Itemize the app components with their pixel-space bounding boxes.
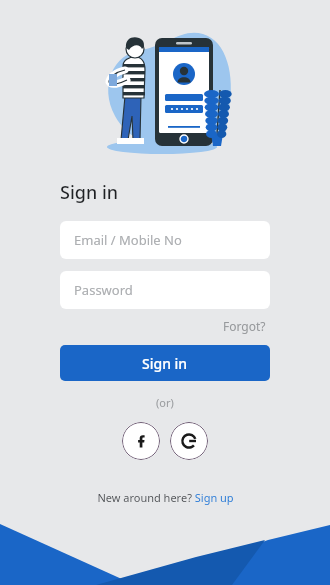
button[interactable]: New around here? Sign up bbox=[93, 488, 238, 507]
staticText: Forgot? bbox=[223, 318, 266, 334]
button[interactable]: Sign in bbox=[60, 345, 270, 381]
staticText: Password bbox=[74, 281, 133, 299]
staticText: Sign in bbox=[142, 354, 188, 373]
button[interactable]: Email / Mobile No bbox=[60, 221, 270, 259]
button[interactable]: Password bbox=[60, 271, 270, 309]
staticText: New around here? Sign up bbox=[97, 490, 234, 505]
staticText: Sign in bbox=[60, 180, 119, 205]
button[interactable]: Forgot? bbox=[219, 315, 270, 337]
staticText: Email / Mobile No bbox=[74, 231, 182, 249]
button[interactable]: Sign in with Facebook bbox=[122, 422, 160, 460]
staticText: (or) bbox=[156, 395, 174, 410]
button[interactable]: Sign in with Google bbox=[170, 422, 208, 460]
